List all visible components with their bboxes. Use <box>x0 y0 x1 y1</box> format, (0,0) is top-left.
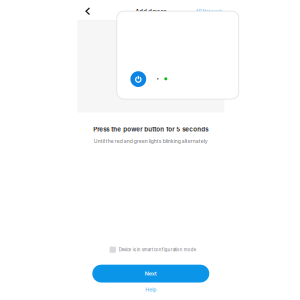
button[interactable]: AP Network <box>196 0 222 20</box>
staticText: Add device <box>135 8 166 15</box>
staticText: AP Network <box>196 9 222 14</box>
staticText: Press the power button for 5 seconds <box>93 126 208 133</box>
button[interactable]: Device is in smart configuration mode <box>107 245 194 254</box>
button[interactable]: Next <box>92 265 209 282</box>
staticText: Next <box>145 270 157 277</box>
staticText: Help <box>145 287 156 293</box>
button[interactable]: Help <box>145 286 156 294</box>
button[interactable]: Back <box>81 0 95 20</box>
staticText: Device is in smart configuration mode <box>119 247 197 252</box>
staticText: Until the red and green lights blinking … <box>94 138 208 144</box>
